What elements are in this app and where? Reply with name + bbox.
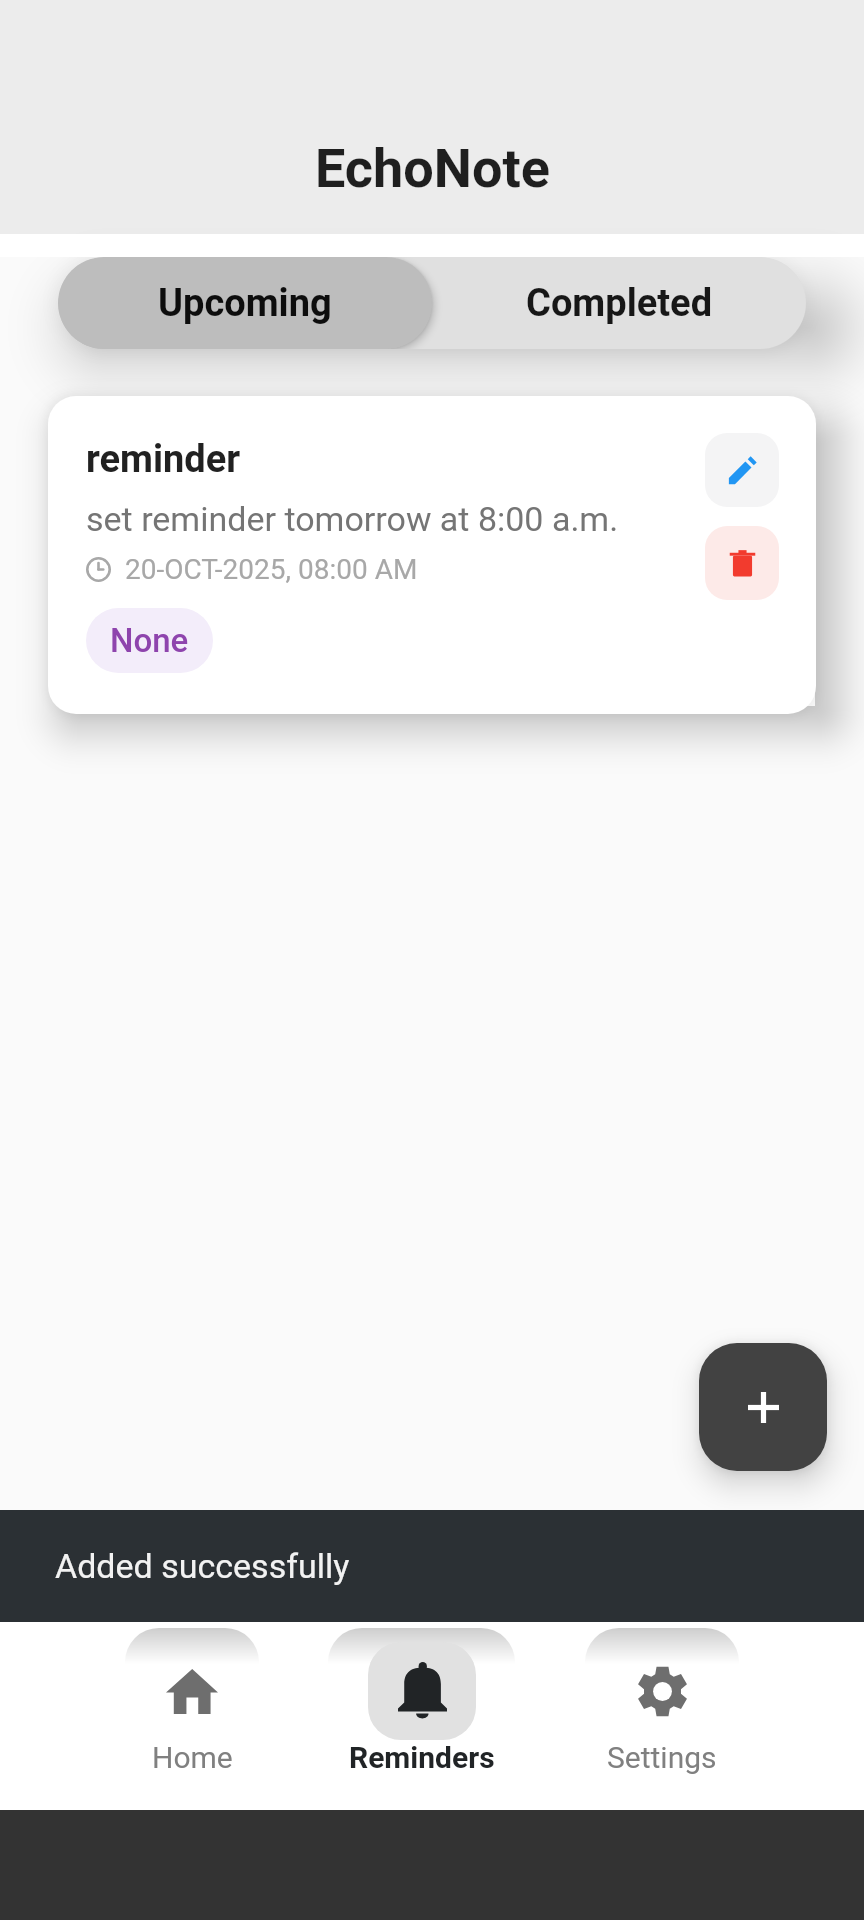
button[interactable]: Home [125, 1622, 259, 1810]
staticText: Completed [526, 281, 713, 326]
button[interactable]: Edit reminder [705, 433, 779, 507]
staticText: reminder [86, 437, 241, 482]
button[interactable]: reminder [48, 396, 816, 714]
staticText: Settings [607, 1740, 717, 1775]
staticText: Added successfully [55, 1546, 350, 1586]
staticText: Upcoming [158, 281, 332, 326]
staticText: None [110, 621, 189, 660]
staticText: 20-OCT-2025, 08:00 AM [125, 553, 418, 586]
staticText: Reminders [349, 1740, 495, 1775]
button[interactable]: Upcoming [58, 257, 432, 349]
staticText: set reminder tomorrow at 8:00 a.m. [86, 499, 619, 539]
button[interactable]: Add reminder [699, 1343, 827, 1471]
button[interactable]: None [86, 608, 213, 673]
staticText: Home [152, 1740, 233, 1775]
button[interactable]: Settings [585, 1622, 739, 1810]
button[interactable]: Delete reminder [705, 526, 779, 600]
staticText: EchoNote [315, 137, 550, 200]
button[interactable]: Reminders [328, 1622, 515, 1810]
button[interactable]: Completed [432, 257, 806, 349]
